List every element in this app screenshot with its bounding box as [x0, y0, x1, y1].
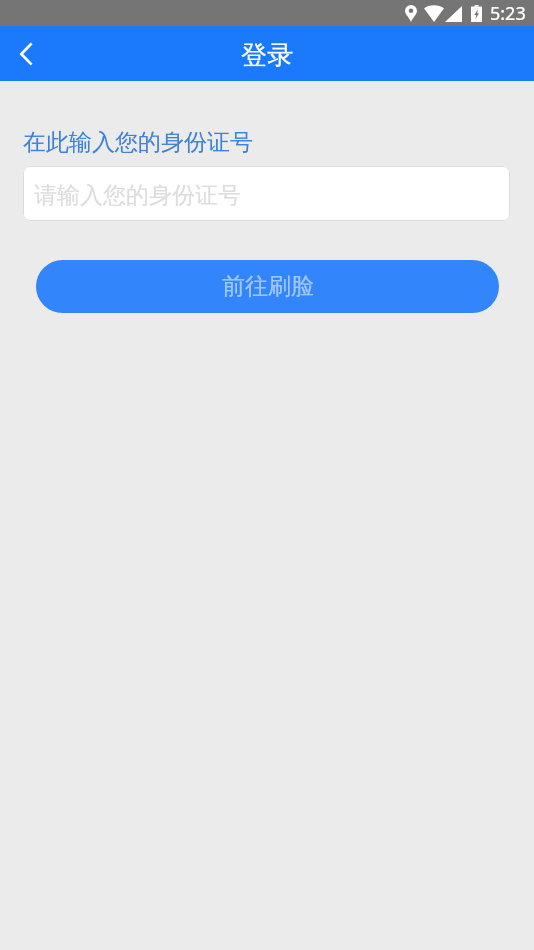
- staticText: 请输入您的身份证号: [34, 181, 241, 210]
- staticText: 在此输入您的身份证号: [23, 128, 253, 157]
- staticText: 5:23: [490, 1, 526, 26]
- button[interactable]: 前往刷脸: [36, 260, 499, 313]
- button[interactable]: Back: [0, 28, 52, 80]
- staticText: 登录: [241, 39, 293, 72]
- button[interactable]: 请输入您的身份证号: [23, 166, 510, 221]
- staticText: 前往刷脸: [222, 272, 314, 301]
